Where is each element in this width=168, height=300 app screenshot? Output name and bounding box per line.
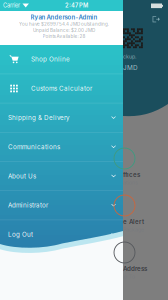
staticText: JMD [123, 64, 138, 71]
button[interactable]: Communications [0, 133, 123, 161]
staticText: Ryan Anderson-Admin [30, 14, 97, 21]
button[interactable]: Shop Online [0, 45, 123, 74]
staticText: Customs Calculator [31, 85, 92, 92]
staticText: About Us [8, 172, 36, 180]
staticText: Points Available: 28 [42, 34, 85, 39]
staticText: Unpaid Balance: $2.00 JMD [33, 27, 95, 33]
staticText: Administrator [8, 201, 48, 209]
staticText: ffices [123, 171, 140, 178]
button[interactable]: About Us [0, 162, 123, 190]
staticText: e Alert [123, 218, 144, 225]
button[interactable]: Shipping & Delivery [0, 103, 123, 132]
staticText: Communications [8, 143, 60, 151]
button[interactable]: Administrator [0, 191, 123, 220]
staticText: 2:47 PM [65, 2, 88, 9]
staticText: Carrier [3, 2, 20, 9]
button[interactable]: Customs Calculator [0, 74, 123, 103]
staticText: ckup. [123, 53, 137, 60]
button[interactable]: Log Out [0, 220, 123, 249]
staticText: You have $2699754.4 JMD outstanding. [19, 21, 109, 27]
staticText: Shop Online [31, 55, 70, 63]
staticText: Address [123, 265, 147, 272]
staticText: Shipping & Delivery [8, 114, 70, 121]
staticText: Log Out [8, 231, 33, 238]
